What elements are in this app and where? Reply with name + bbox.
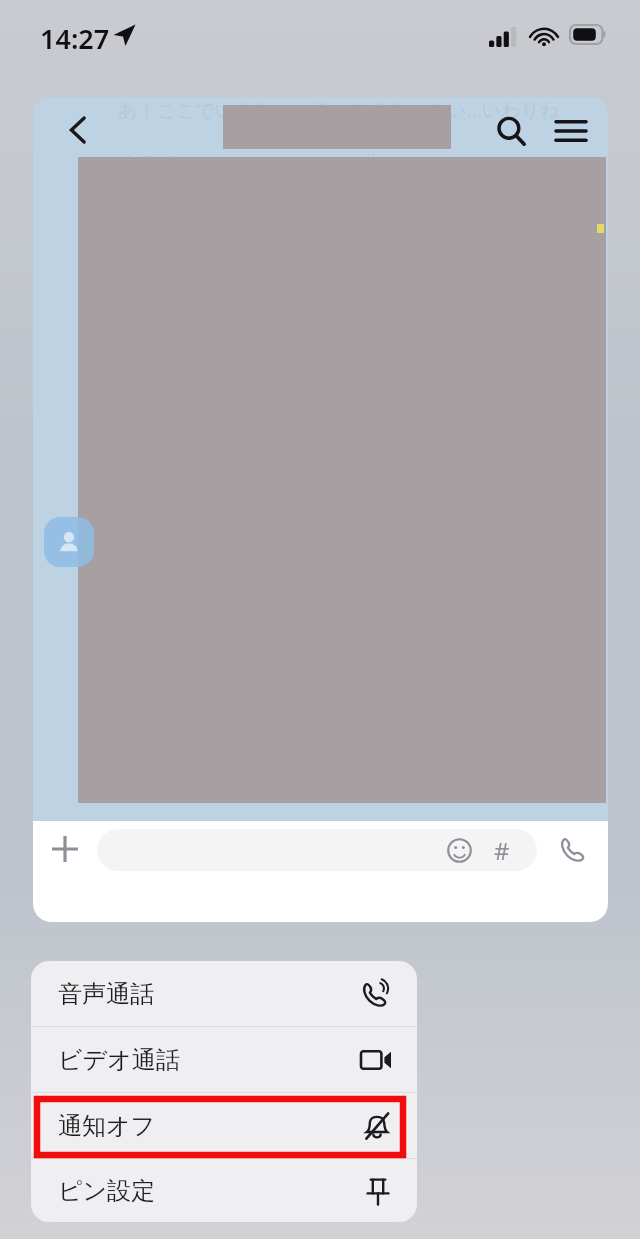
button[interactable]: ビデオ通話	[31, 1027, 417, 1092]
staticText: 通知オフ	[58, 1111, 363, 1141]
staticText: ピン設定	[58, 1176, 365, 1206]
button[interactable]: Menu	[545, 105, 597, 157]
button[interactable]: 通知オフ	[31, 1093, 417, 1158]
button[interactable]: Call	[549, 825, 597, 873]
staticText: 14:27	[40, 20, 110, 57]
button[interactable]: Back	[53, 105, 103, 155]
staticText: ビデオ通話	[58, 1045, 361, 1075]
button[interactable]: ピン設定	[31, 1159, 417, 1222]
staticText: #	[494, 834, 510, 867]
staticText: あ！ここでいなとこ、えい！うないかい…いわりね	[118, 97, 560, 123]
button[interactable]: Emoji	[97, 829, 537, 871]
button[interactable]: Add	[41, 825, 89, 873]
button[interactable]: Emoji	[442, 833, 476, 867]
button[interactable]: 音声通話	[31, 961, 417, 1026]
staticText: 音声通話	[58, 979, 359, 1009]
button[interactable]: Search	[485, 105, 537, 157]
button[interactable]: Hashtag	[485, 833, 519, 867]
staticText: めろでぃーの 作っ	[118, 149, 402, 175]
